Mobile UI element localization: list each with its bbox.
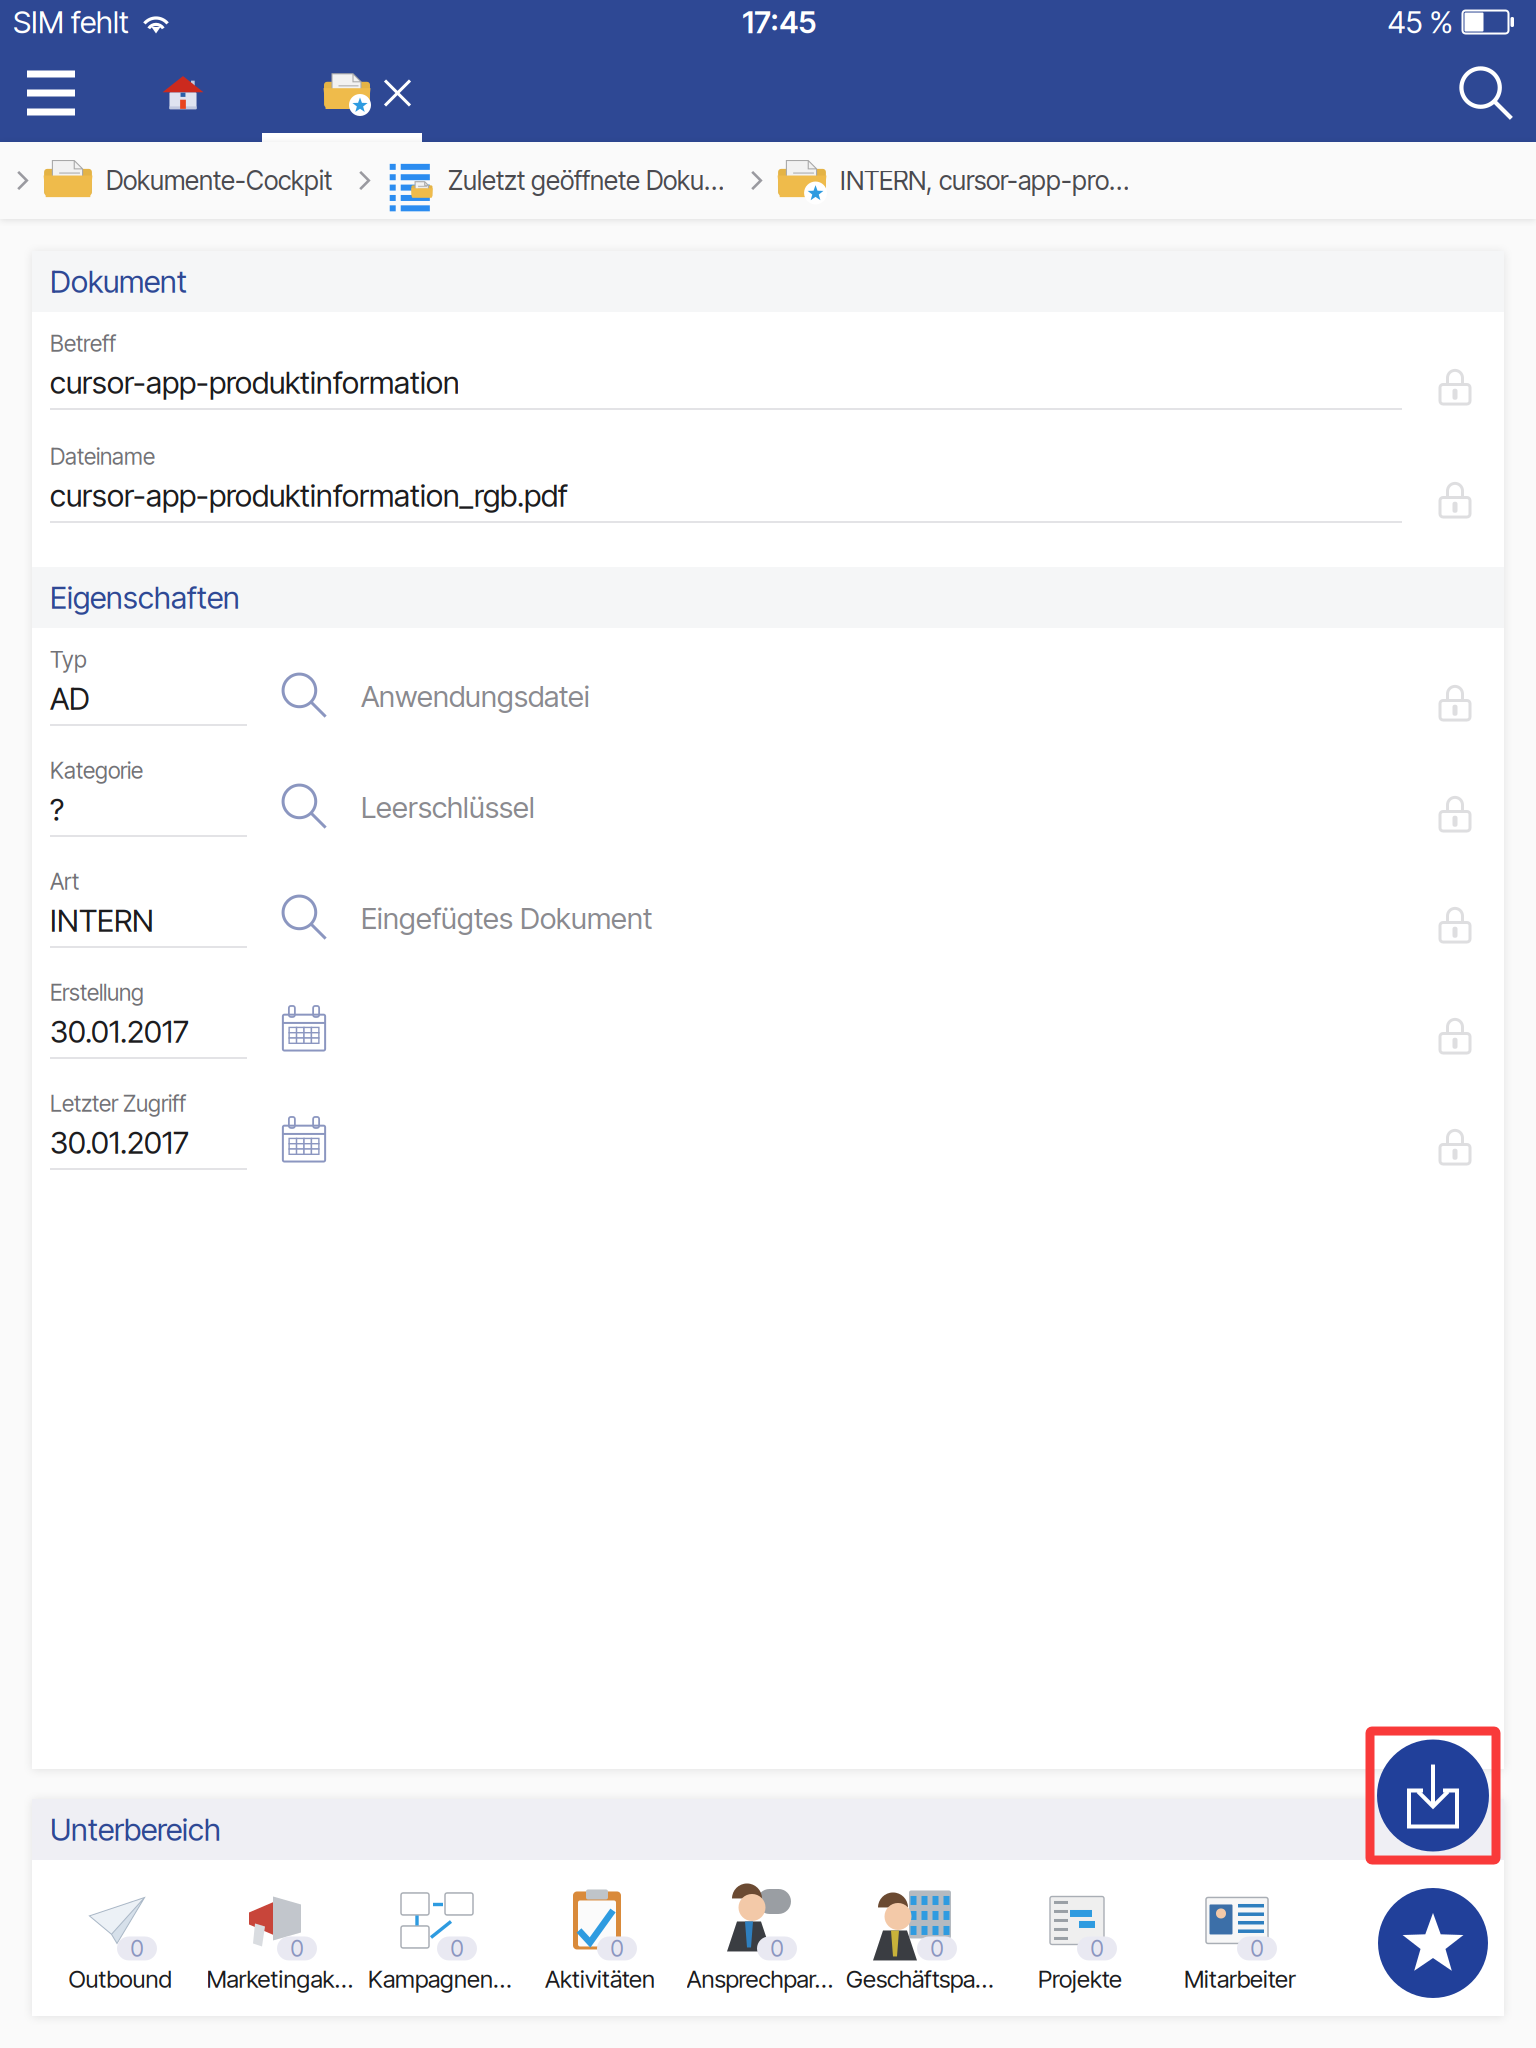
button[interactable]: 0 xyxy=(1160,1882,1320,1993)
staticText: 0 xyxy=(1250,1935,1263,1962)
button[interactable]: Dokument herunterladen xyxy=(1366,1727,1500,1864)
staticText: 45 % xyxy=(1387,3,1452,40)
staticText: 0 xyxy=(610,1935,623,1962)
staticText: Dokument xyxy=(50,263,187,300)
staticText: INTERN xyxy=(50,902,154,939)
button[interactable]: 0 xyxy=(40,1882,200,1993)
staticText: Erstellung xyxy=(50,979,144,1006)
staticText: 30.01.2017 xyxy=(50,1013,189,1050)
staticText: 0 xyxy=(290,1935,303,1962)
staticText: INTERN, cursor-app-pro… xyxy=(840,165,1129,196)
staticText: Eigenschaften xyxy=(50,579,240,616)
staticText: Geschäftspa… xyxy=(846,1964,994,1993)
staticText: Dateiname xyxy=(50,443,155,470)
staticText: Mitarbeiter xyxy=(1184,1964,1296,1993)
button[interactable]: Zuletzt geöffnete Doku… xyxy=(352,160,724,201)
button[interactable]: 0 xyxy=(520,1882,680,1993)
staticText: 0 xyxy=(1090,1935,1103,1962)
staticText: Zuletzt geöffnete Doku… xyxy=(448,165,724,196)
staticText: Kampagnen… xyxy=(368,1964,512,1993)
button[interactable]: Menü xyxy=(4,44,98,142)
button[interactable]: 0 xyxy=(840,1882,1000,1993)
staticText: 0 xyxy=(450,1935,463,1962)
staticText: cursor-app-produktinformation xyxy=(50,364,460,401)
staticText: Kategorie xyxy=(50,757,143,784)
button[interactable]: 0 xyxy=(360,1882,520,1993)
staticText: Leerschlüssel xyxy=(361,789,535,825)
staticText: Projekte xyxy=(1038,1964,1122,1993)
staticText: 30.01.2017 xyxy=(50,1124,189,1161)
button[interactable]: Geöffnetes Dokument schließen xyxy=(286,44,446,142)
staticText: Betreff xyxy=(50,330,116,357)
staticText: Ansprechpar… xyxy=(686,1964,833,1993)
staticText: 0 xyxy=(770,1935,783,1962)
staticText: Anwendungsdatei xyxy=(361,678,590,714)
staticText: SIM fehlt xyxy=(13,3,129,40)
staticText: Dokumente-Cockpit xyxy=(106,165,332,196)
staticText: cursor-app-produktinformation_rgb.pdf xyxy=(50,477,568,514)
staticText: 0 xyxy=(130,1935,143,1962)
staticText: 17:45 xyxy=(742,3,816,40)
staticText: Typ xyxy=(50,646,87,673)
button[interactable]: Wertehilfe xyxy=(247,888,361,946)
button[interactable]: Suchen xyxy=(1438,44,1534,142)
staticText: Letzter Zugriff xyxy=(50,1090,186,1117)
button[interactable]: 0 xyxy=(680,1882,840,1993)
button[interactable]: Start xyxy=(136,44,230,142)
staticText: Marketingak… xyxy=(206,1964,353,1993)
staticText: AD xyxy=(50,680,90,717)
staticText: Eingefügtes Dokument xyxy=(361,900,652,936)
button[interactable]: Wertehilfe xyxy=(247,666,361,724)
staticText: Art xyxy=(50,868,79,895)
button[interactable]: Favorit xyxy=(1378,1888,1488,1998)
button[interactable]: Wertehilfe xyxy=(247,777,361,835)
staticText: Outbound xyxy=(68,1964,171,1993)
button[interactable]: INTERN, cursor-app-pro… xyxy=(744,160,1129,201)
staticText: Unterbereich xyxy=(50,1811,221,1848)
button[interactable]: Dokumente-Cockpit xyxy=(10,160,332,201)
button[interactable]: Datum wählen xyxy=(247,999,361,1057)
staticText: 0 xyxy=(930,1935,943,1962)
staticText: Aktivitäten xyxy=(545,1964,655,1993)
staticText: ? xyxy=(50,791,64,828)
button[interactable]: 0 xyxy=(1000,1882,1160,1993)
button[interactable]: 0 xyxy=(200,1882,360,1993)
button[interactable]: Datum wählen xyxy=(247,1110,361,1168)
